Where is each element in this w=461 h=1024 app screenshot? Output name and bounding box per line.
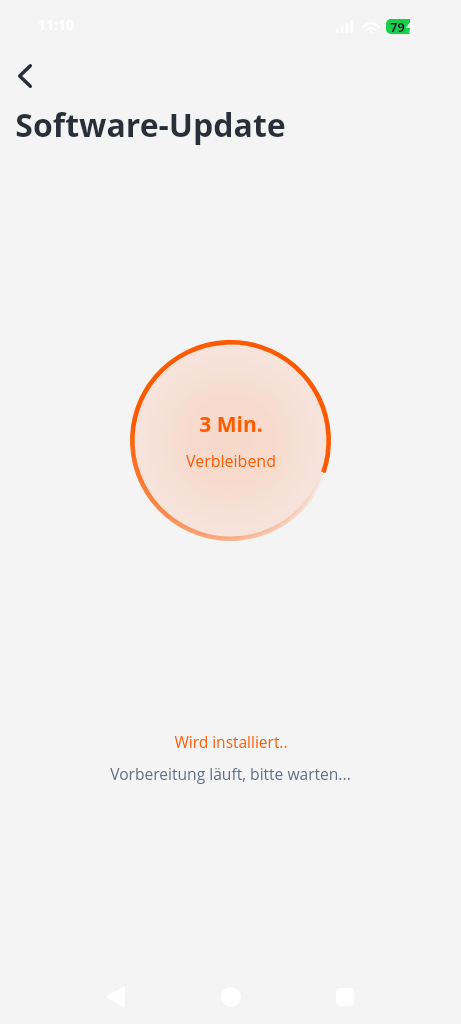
- staticText: Wird installiert..: [174, 731, 288, 752]
- staticText: Vorbereitung läuft, bitte warten...: [110, 763, 351, 784]
- button[interactable]: Recent apps: [321, 973, 368, 1020]
- staticText: Software-Update: [15, 103, 286, 147]
- button[interactable]: Home: [207, 973, 254, 1020]
- staticText: Verbleibend: [186, 450, 276, 472]
- button[interactable]: Back: [3, 56, 43, 96]
- staticText: 11:10: [38, 15, 74, 34]
- button[interactable]: Back: [92, 973, 139, 1020]
- staticText: 79: [390, 19, 405, 34]
- staticText: 3 Min.: [199, 410, 263, 439]
